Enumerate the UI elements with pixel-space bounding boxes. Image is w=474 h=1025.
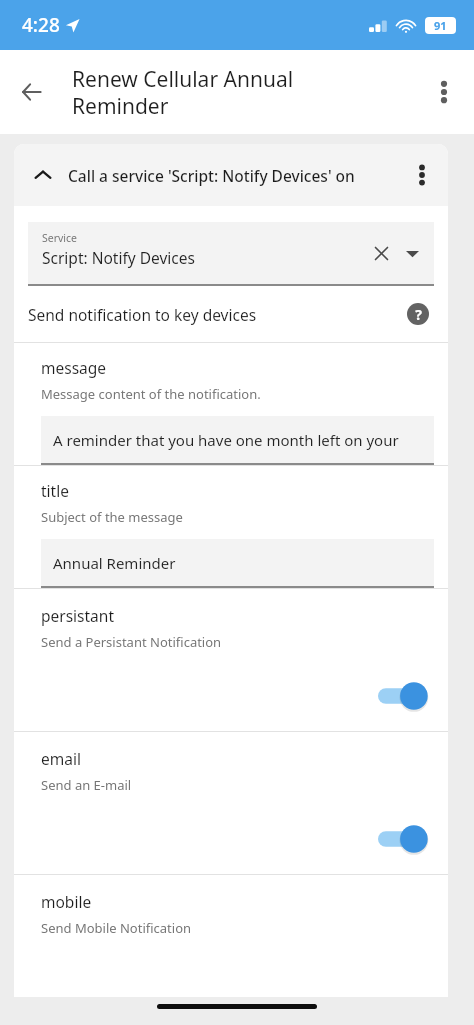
staticText: A reminder that you have one month left … (53, 430, 399, 450)
button[interactable]: Call a service 'Script: Notify Devices' … (14, 144, 448, 206)
button[interactable]: title (14, 466, 448, 588)
staticText: mobile (41, 891, 92, 912)
staticText: Send a Persistant Notification (41, 633, 222, 651)
button[interactable]: Toggle (378, 681, 434, 711)
staticText: Send notification to key devices (28, 304, 402, 325)
staticText: Annual Reminder (53, 553, 176, 573)
staticText: 4:28 (22, 12, 60, 38)
button[interactable]: Toggle (378, 824, 434, 854)
staticText: ? (415, 305, 422, 324)
staticText: Send an E-mail (41, 776, 132, 794)
button[interactable]: More options (420, 68, 468, 116)
button[interactable]: Clear (368, 240, 394, 266)
staticText: persistant (41, 605, 114, 626)
staticText: Subject of the message (41, 508, 183, 526)
staticText: Send Mobile Notification (41, 919, 192, 937)
staticText: Message content of the notification. (41, 385, 261, 403)
staticText: 91 (434, 18, 447, 33)
button[interactable]: message (14, 343, 448, 465)
staticText: message (41, 357, 107, 378)
button[interactable]: Send notification to key devices (14, 286, 448, 342)
button[interactable]: Service (28, 222, 434, 284)
button[interactable]: Card options (402, 155, 442, 195)
staticText: email (41, 748, 81, 769)
button[interactable]: Dropdown (400, 241, 424, 265)
button[interactable]: Back (8, 68, 56, 116)
button[interactable]: persistant (14, 589, 448, 731)
staticText: Call a service 'Script: Notify Devices' … (68, 165, 402, 186)
staticText: Renew Cellular Annual Reminder (72, 65, 420, 120)
button[interactable]: Help (402, 298, 434, 330)
staticText: Script: Notify Devices (42, 247, 195, 268)
staticText: title (41, 480, 69, 501)
staticText: Service (42, 231, 78, 245)
button[interactable]: email (14, 732, 448, 874)
